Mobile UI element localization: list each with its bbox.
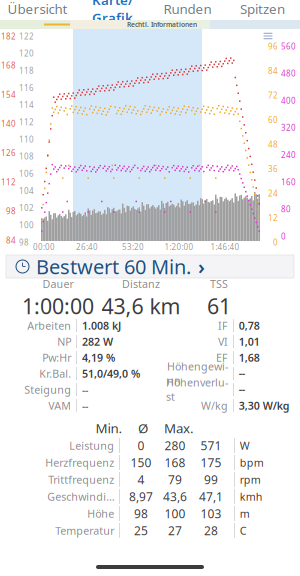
staticText: Übersicht [7,0,67,18]
staticText: 1,01 [239,334,260,349]
staticText: Bestwert 60 Min. [36,253,191,280]
staticText: Distanz [122,277,160,291]
staticText: 27 [168,522,182,538]
staticText: 96 [268,41,278,52]
staticText: 98 [134,505,148,521]
staticText: › [198,253,205,280]
staticText: Höhengewinn [167,359,228,388]
button[interactable]: Bestwert 60 Min. [6,255,294,278]
staticText: 84 [6,235,16,246]
staticText: 48 [268,139,278,150]
staticText: 51,0/49,0 % [82,366,140,381]
staticText: 400 [281,95,296,106]
staticText: 4,19 % [82,350,115,365]
staticText: 0 [137,437,144,453]
staticText: W [240,438,250,453]
staticText: 1:00:00 [22,292,94,320]
staticText: 28 [204,522,218,538]
staticText: 99 [204,471,218,487]
staticText: 98 [19,237,29,248]
staticText: 100 [164,505,185,521]
staticText: 282 W [82,334,113,349]
staticText: 72 [268,90,278,101]
staticText: 3,30 W/kg [239,398,290,413]
staticText: Rechtl. Informationen [127,20,197,29]
staticText: 24 [268,188,278,199]
staticText: 47,1 [199,488,223,504]
staticText: 116 [19,82,34,93]
staticText: 43,6 km [101,292,180,320]
staticText: 280 [164,437,185,453]
staticText: -- [239,382,245,397]
staticText: Trittfrequenz [48,472,114,487]
staticText: 1.008 kJ [82,318,121,333]
staticText: Ø [138,419,148,437]
staticText: 240 [281,150,296,160]
staticText: 182 [1,31,16,42]
staticText: rpm [240,472,261,487]
staticText: 126 [1,148,16,158]
staticText: Min. [95,419,122,437]
button[interactable]: Übersicht [0,0,75,20]
staticText: -- [82,398,88,413]
staticText: 104 [19,185,34,196]
button[interactable]: Spitzen [225,0,300,20]
staticText: kmh [240,489,263,504]
staticText: 571 [200,437,221,453]
staticText: Max. [164,419,194,437]
staticText: Höhenverlust [166,375,228,404]
staticText: m [240,506,250,521]
staticText: 43,6 [163,488,187,504]
staticText: 12 [268,212,278,223]
button[interactable]: Karte/Grafik [75,0,150,20]
staticText: 25 [134,522,148,538]
staticText: 79 [168,471,182,487]
staticText: 0,78 [239,318,260,333]
staticText: 36 [268,163,278,174]
staticText: 1,68 [239,350,260,365]
button[interactable]: Runden [150,0,225,20]
staticText: Steigung [24,382,71,397]
staticText: Geschwindi… [47,489,114,504]
staticText: 154 [1,89,16,100]
staticText: 112 [1,177,16,187]
staticText: IF [218,318,228,333]
staticText: Arbeiten [27,318,71,333]
staticText: Pw:Hr [42,350,71,365]
staticText: 60 [268,114,278,125]
staticText: 103 [200,505,221,521]
staticText: -- [82,382,88,397]
staticText: TSS [210,277,228,291]
staticText: bpm [240,455,264,470]
staticText: 114 [19,100,34,110]
staticText: 110 [19,134,34,145]
staticText: VI [218,334,228,349]
staticText: Kr.Bal. [39,366,71,381]
staticText: C [240,523,247,538]
staticText: VAM [48,398,71,413]
staticText: 175 [200,454,221,470]
staticText: EF [216,350,228,365]
staticText: 168 [1,60,16,71]
staticText: 108 [19,151,34,162]
button[interactable]: Diagrammoptionen [260,30,276,42]
staticText: 106 [19,168,34,179]
staticText: Dauer [42,277,73,291]
staticText: 61 [207,292,231,320]
staticText: Karte/Grafik [92,0,133,26]
staticText: 1:46:40 [210,242,239,252]
staticText: 00:00 [33,242,55,252]
staticText: 0 [273,237,278,248]
staticText: 140 [1,118,16,129]
staticText: 480 [281,68,296,79]
staticText: 80 [281,204,291,214]
staticText: 150 [130,454,151,470]
staticText: 112 [19,117,34,127]
staticText: Spitzen [240,0,285,18]
staticText: Temperatur [55,523,114,538]
staticText: 53:20 [122,242,144,252]
staticText: 100 [19,220,34,230]
staticText: 168 [164,454,185,470]
staticText: NP [57,334,71,349]
staticText: 122 [19,31,34,42]
